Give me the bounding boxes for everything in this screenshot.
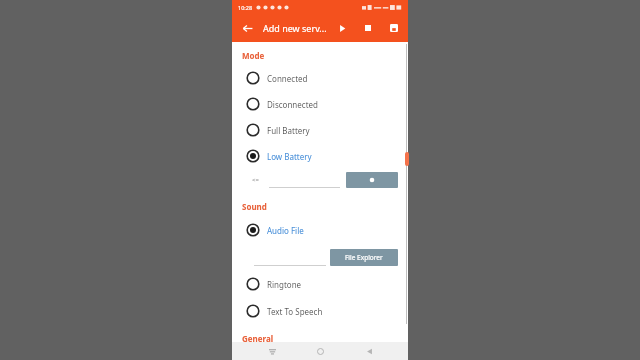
button[interactable]: Text To Speech	[246, 301, 400, 321]
button[interactable]	[269, 172, 340, 188]
button[interactable]: Connected	[246, 68, 400, 88]
staticText: Add new serv...	[263, 22, 327, 34]
button[interactable]: Pick	[346, 172, 398, 188]
button[interactable]	[254, 250, 326, 266]
button[interactable]: Disconnected	[246, 94, 400, 114]
button[interactable]: Ringtone	[246, 274, 400, 294]
button[interactable]: File Explorer	[330, 249, 398, 266]
button[interactable]: Back	[237, 18, 257, 38]
staticText: Mode	[242, 50, 265, 61]
staticText: Low Battery	[267, 151, 312, 162]
button[interactable]: Low Battery	[246, 146, 400, 166]
staticText: Sound	[242, 201, 267, 212]
button[interactable]: Home	[311, 342, 329, 360]
staticText: Text To Speech	[267, 306, 323, 317]
staticText: Audio File	[267, 225, 304, 236]
staticText: Disconnected	[267, 99, 318, 110]
staticText: Connected	[267, 73, 308, 84]
button[interactable]: Play	[333, 19, 351, 37]
button[interactable]: Full Battery	[246, 120, 400, 140]
button[interactable]: Audio File	[246, 220, 400, 240]
button[interactable]: Save	[385, 19, 403, 37]
button[interactable]: Stop	[359, 19, 377, 37]
staticText: File Explorer	[345, 253, 383, 262]
button[interactable]: Back	[360, 342, 378, 360]
staticText: 10:28	[238, 4, 253, 11]
button[interactable]: Recent apps	[263, 342, 281, 360]
staticText: Ringtone	[267, 279, 302, 290]
staticText: Full Battery	[267, 125, 310, 136]
staticText: General	[242, 333, 274, 342]
staticText: <=	[252, 176, 259, 184]
